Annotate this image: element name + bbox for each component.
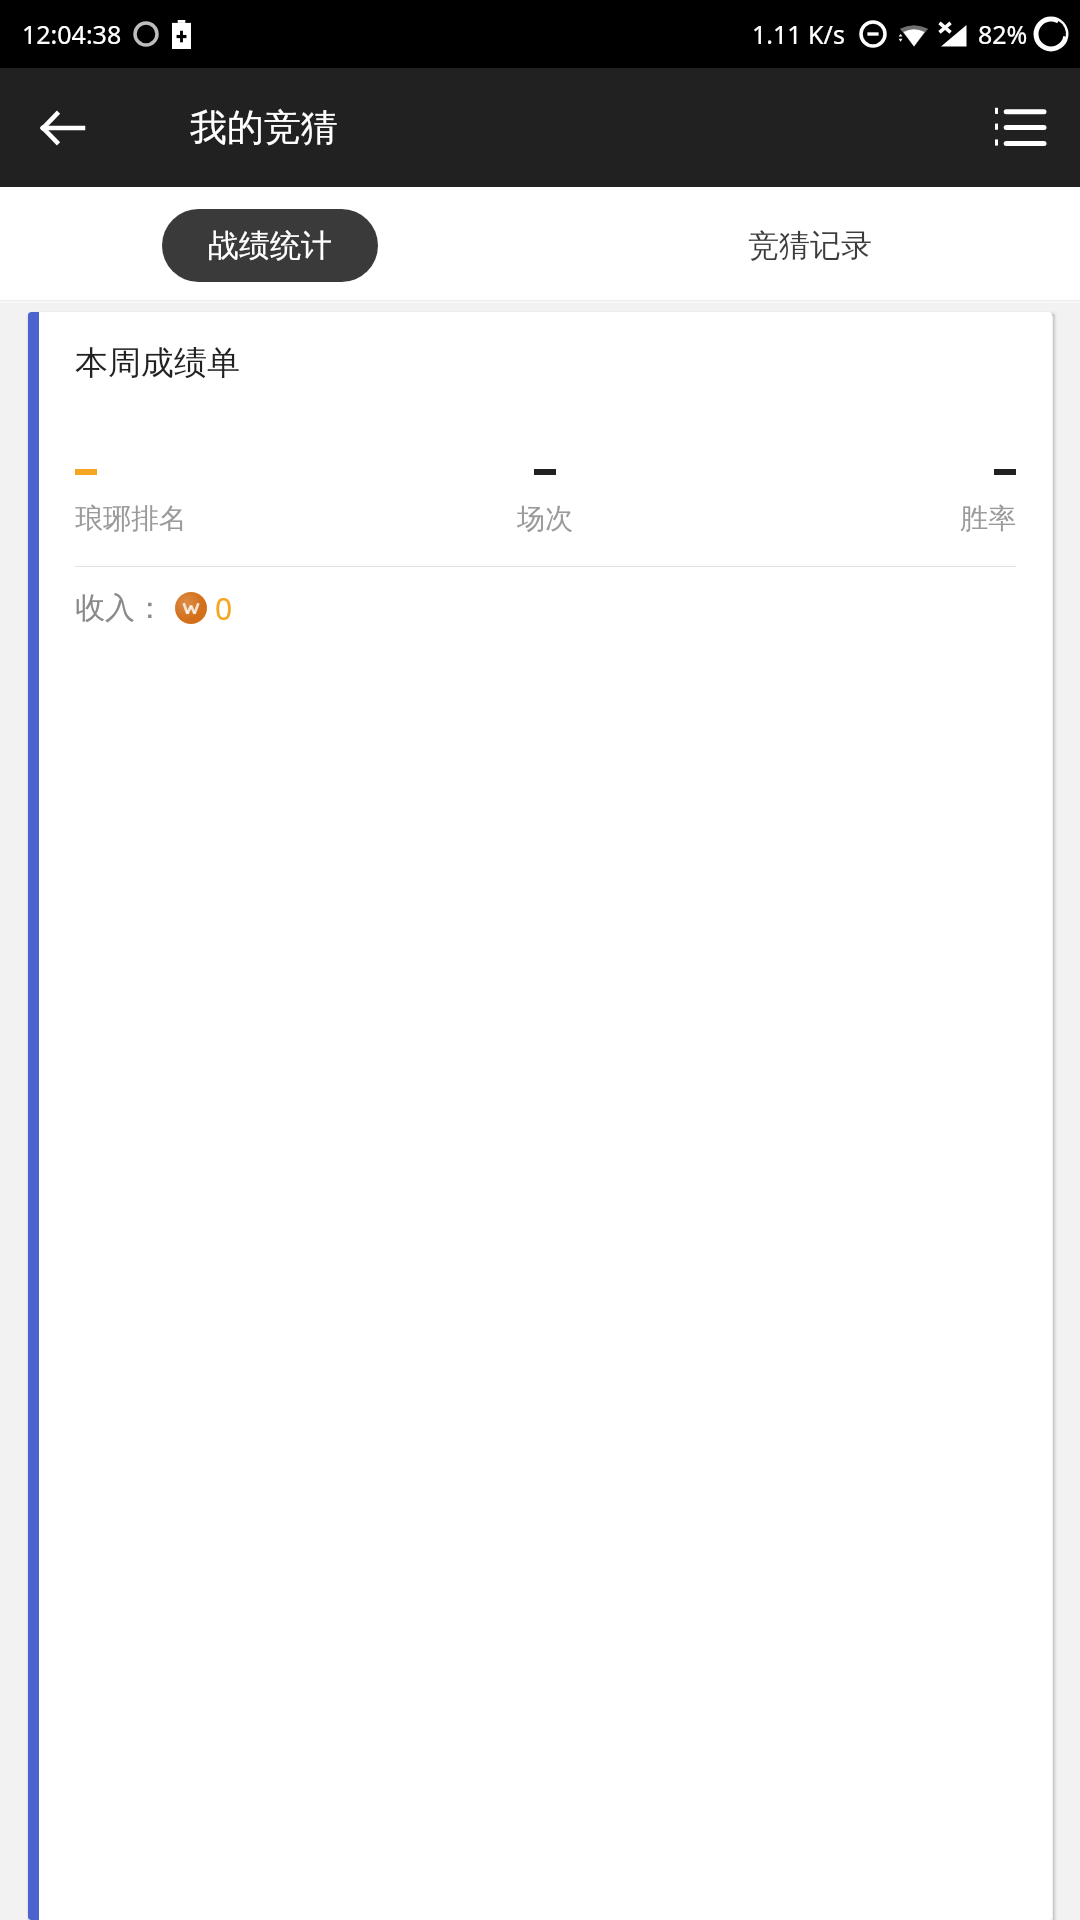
- staticText: 竞猜记录: [748, 226, 872, 265]
- staticText: 1.11 K/s: [752, 17, 845, 51]
- staticText: 场次: [517, 501, 573, 536]
- staticText: 12:04:38: [22, 17, 122, 51]
- staticText: 战绩统计: [208, 226, 332, 265]
- button[interactable]: 战绩统计: [162, 209, 378, 282]
- staticText: 胜率: [960, 501, 1016, 536]
- staticText: 我的竞猜: [190, 104, 338, 151]
- button[interactable]: Back: [30, 96, 94, 160]
- staticText: 本周成绩单: [75, 342, 240, 384]
- button[interactable]: 竞猜记录: [540, 187, 1080, 303]
- button[interactable]: Sort list: [982, 93, 1052, 163]
- button[interactable]: 本周成绩单: [28, 312, 1052, 1920]
- staticText: 0: [215, 588, 233, 629]
- staticText: 琅琊排名: [75, 501, 187, 536]
- staticText: 82%: [978, 17, 1028, 51]
- staticText: 收入：: [75, 589, 165, 627]
